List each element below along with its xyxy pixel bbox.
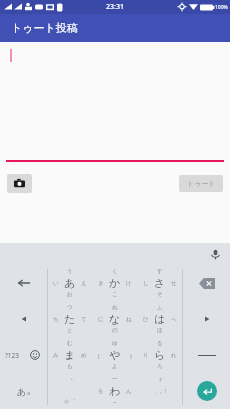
staticText: トゥート投稿 [11,21,78,35]
staticText: ゛ [66,377,74,386]
staticText: の [112,327,118,334]
staticText: は [154,312,166,326]
staticText: つ [67,304,73,311]
staticText: に [98,316,104,323]
staticText: な [109,312,121,326]
staticText: あ [64,276,76,290]
button[interactable]: Cursor right [183,301,230,337]
staticText: へ [171,316,177,323]
staticText: ?123 [5,351,19,360]
staticText: ) [130,352,132,359]
button[interactable]: トゥート [179,175,223,192]
button[interactable]: Delete [183,265,230,301]
staticText: て [81,316,87,323]
button[interactable]: は [137,301,182,337]
staticText: め [81,352,87,359]
staticText: ろ [157,363,163,370]
staticText: や [109,348,121,362]
staticText: う [67,268,73,275]
staticText: ま [64,348,76,362]
staticText: ひ [143,316,149,323]
button[interactable]: あ [0,373,47,409]
staticText: ち [53,316,59,323]
staticText: ほ [157,327,163,334]
button[interactable]: ま [48,337,92,373]
staticText: 100% [215,4,228,11]
staticText: ね [126,316,132,323]
button[interactable]: た [48,301,92,337]
staticText: か [109,276,121,290]
staticText: り [143,352,149,359]
button[interactable]: Space [183,337,230,373]
staticText: も [67,363,73,370]
staticText: す [157,268,163,275]
staticText: し [143,280,149,287]
staticText: ? [159,376,162,384]
staticText: お [67,291,73,298]
button[interactable]: Cursor left [0,301,47,337]
staticText: み [53,352,59,359]
button[interactable]: Emoji [23,337,47,373]
staticText: た [64,312,76,326]
button[interactable]: や [92,337,137,373]
staticText: そ [157,291,163,298]
staticText: と [67,327,73,334]
staticText: ふ [157,304,163,311]
staticText: る [157,340,163,347]
staticText: ん [126,388,132,395]
staticText: さ [154,276,166,290]
staticText: わ [109,384,121,398]
staticText: よ [112,363,118,370]
button[interactable]: Enter [183,373,230,409]
staticText: き [98,280,104,287]
staticText: ー [112,376,118,383]
staticText: ら [154,348,166,362]
staticText: ぬ [112,304,118,311]
staticText: 23:31 [106,2,124,12]
button[interactable]: わ [92,373,137,409]
button[interactable]: Attach photo [7,174,32,193]
staticText: け [126,280,132,287]
staticText: れ [171,352,177,359]
staticText: む [67,340,73,347]
staticText: く [112,268,118,275]
staticText: こ [112,291,118,298]
staticText: を [98,388,104,395]
staticText: い [53,280,59,287]
staticText: あ [17,386,27,397]
button[interactable]: ? [137,373,182,409]
button[interactable]: Voice input [208,247,222,261]
staticText: 小 ゜ [64,398,76,405]
button[interactable]: あ [48,265,92,301]
staticText: ( [98,352,100,359]
button[interactable]: か [92,265,137,301]
staticText: せ [171,280,177,287]
staticText: ～ [112,399,118,406]
staticText: 、。! [154,387,167,395]
staticText: a [27,389,31,397]
staticText: トゥート [187,179,216,188]
staticText: え [81,280,87,287]
button[interactable]: ?123 [0,337,23,373]
button[interactable]: な [92,301,137,337]
button[interactable]: ゛ [48,373,92,409]
staticText: ゆ [112,340,118,347]
button[interactable]: ら [137,337,182,373]
button[interactable]: さ [137,265,182,301]
button[interactable]: Back [0,265,47,301]
